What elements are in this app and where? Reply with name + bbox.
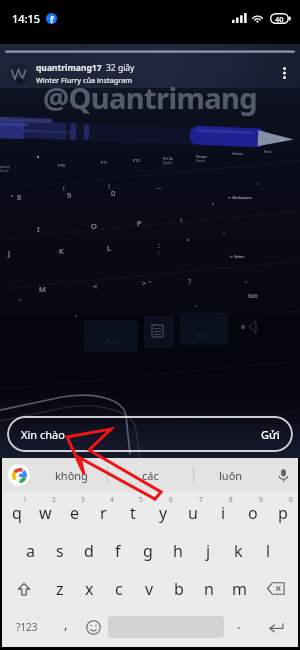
button[interactable]: v [134,570,164,607]
staticText: Home [232,151,243,156]
staticText: q [12,502,22,524]
button[interactable]: Backspace [254,570,298,607]
staticText: h [173,540,183,562]
staticText: ; [158,248,160,256]
staticText: I [37,224,40,234]
button[interactable]: o [238,492,268,531]
button[interactable]: không [36,458,107,492]
button[interactable]: x [74,570,104,607]
button[interactable]: f [103,531,133,570]
button[interactable]: e [60,492,89,531]
staticText: l [266,540,271,562]
button[interactable]: z [45,570,74,607]
button[interactable]: b [164,570,194,607]
staticText: 9 [259,495,263,504]
button[interactable]: Emoji [79,607,108,647]
button[interactable]: c [104,570,134,607]
staticText: a [26,540,35,562]
staticText: o [248,502,258,524]
button[interactable]: . [224,607,254,647]
button[interactable]: More options [273,62,295,84]
staticText: P [137,218,142,228]
button[interactable]: ?123 [2,607,52,647]
staticText: f [115,540,121,562]
button[interactable]: Enter [254,607,298,647]
button[interactable]: l [253,531,283,570]
staticText: O [91,221,97,231]
staticText: Shift [248,293,258,299]
staticText: không [55,468,88,483]
staticText: Ctrl [196,332,205,339]
button[interactable]: q [2,492,31,531]
button[interactable]: , [52,607,79,647]
staticText: { [180,216,183,224]
staticText: 9 [67,190,72,200]
staticText: End [264,149,271,154]
button[interactable]: Xin chào [7,416,293,452]
button[interactable]: các [108,458,193,492]
button[interactable]: t [118,492,148,531]
staticText: d [84,540,94,562]
staticText: b [174,578,184,600]
staticText: , [64,615,68,633]
button[interactable]: w [31,492,60,531]
staticText: w [39,502,52,524]
button[interactable]: s [45,531,74,570]
staticText: F12 [133,158,140,164]
staticText: M [39,284,46,294]
button[interactable]: j [193,531,223,570]
button[interactable]: n [194,570,224,607]
staticText: i [221,502,226,524]
button[interactable]: Shift [2,570,45,607]
staticText: 6 [169,495,173,504]
staticText: m [232,578,247,600]
staticText: s [56,540,64,562]
staticText: — [156,184,163,192]
staticText: 2 [52,495,56,504]
staticText: z [56,578,64,600]
button[interactable]: Profile picture [8,62,31,85]
button[interactable]: y [148,492,178,531]
button[interactable]: u [178,492,208,531]
staticText: e [70,502,80,524]
button[interactable]: luôn [194,458,268,492]
staticText: Alt Gr [105,338,119,345]
staticText: Break [0,169,9,173]
button[interactable]: g [133,531,163,570]
staticText: ) [108,182,110,190]
staticText: f [50,13,54,24]
staticText: c [115,578,123,600]
staticText: 8 [229,495,233,504]
staticText: luôn [219,468,243,483]
staticText: Winter Flurry của instagram [36,75,133,85]
button[interactable]: k [223,531,253,570]
staticText: K [59,246,64,256]
button[interactable]: h [163,531,193,570]
staticText: k [234,540,243,562]
staticText: Pause [196,154,207,159]
staticText: > [142,278,147,288]
staticText: 8 [17,192,22,202]
staticText: @Quantrimang [43,78,257,117]
button[interactable]: r [89,492,118,531]
staticText: 5 [139,495,143,504]
staticText: u [188,502,198,524]
staticText: 0 [289,495,293,504]
staticText: p [278,502,288,524]
staticText: g [143,540,153,562]
staticText: L [107,243,111,253]
button[interactable]: m [224,570,254,607]
staticText: quantrimang17 [36,62,102,74]
staticText: 14:15 [12,11,41,26]
button[interactable]: a [16,531,45,570]
staticText: F11 [101,160,108,166]
button[interactable]: i [208,492,238,531]
staticText: x [85,578,94,600]
staticText: . [237,615,241,633]
button[interactable]: Voice input [268,458,298,492]
button[interactable]: p [268,492,298,531]
button[interactable]: Google search [2,458,36,492]
button[interactable]: d [74,531,103,570]
staticText: 0 [111,188,116,198]
